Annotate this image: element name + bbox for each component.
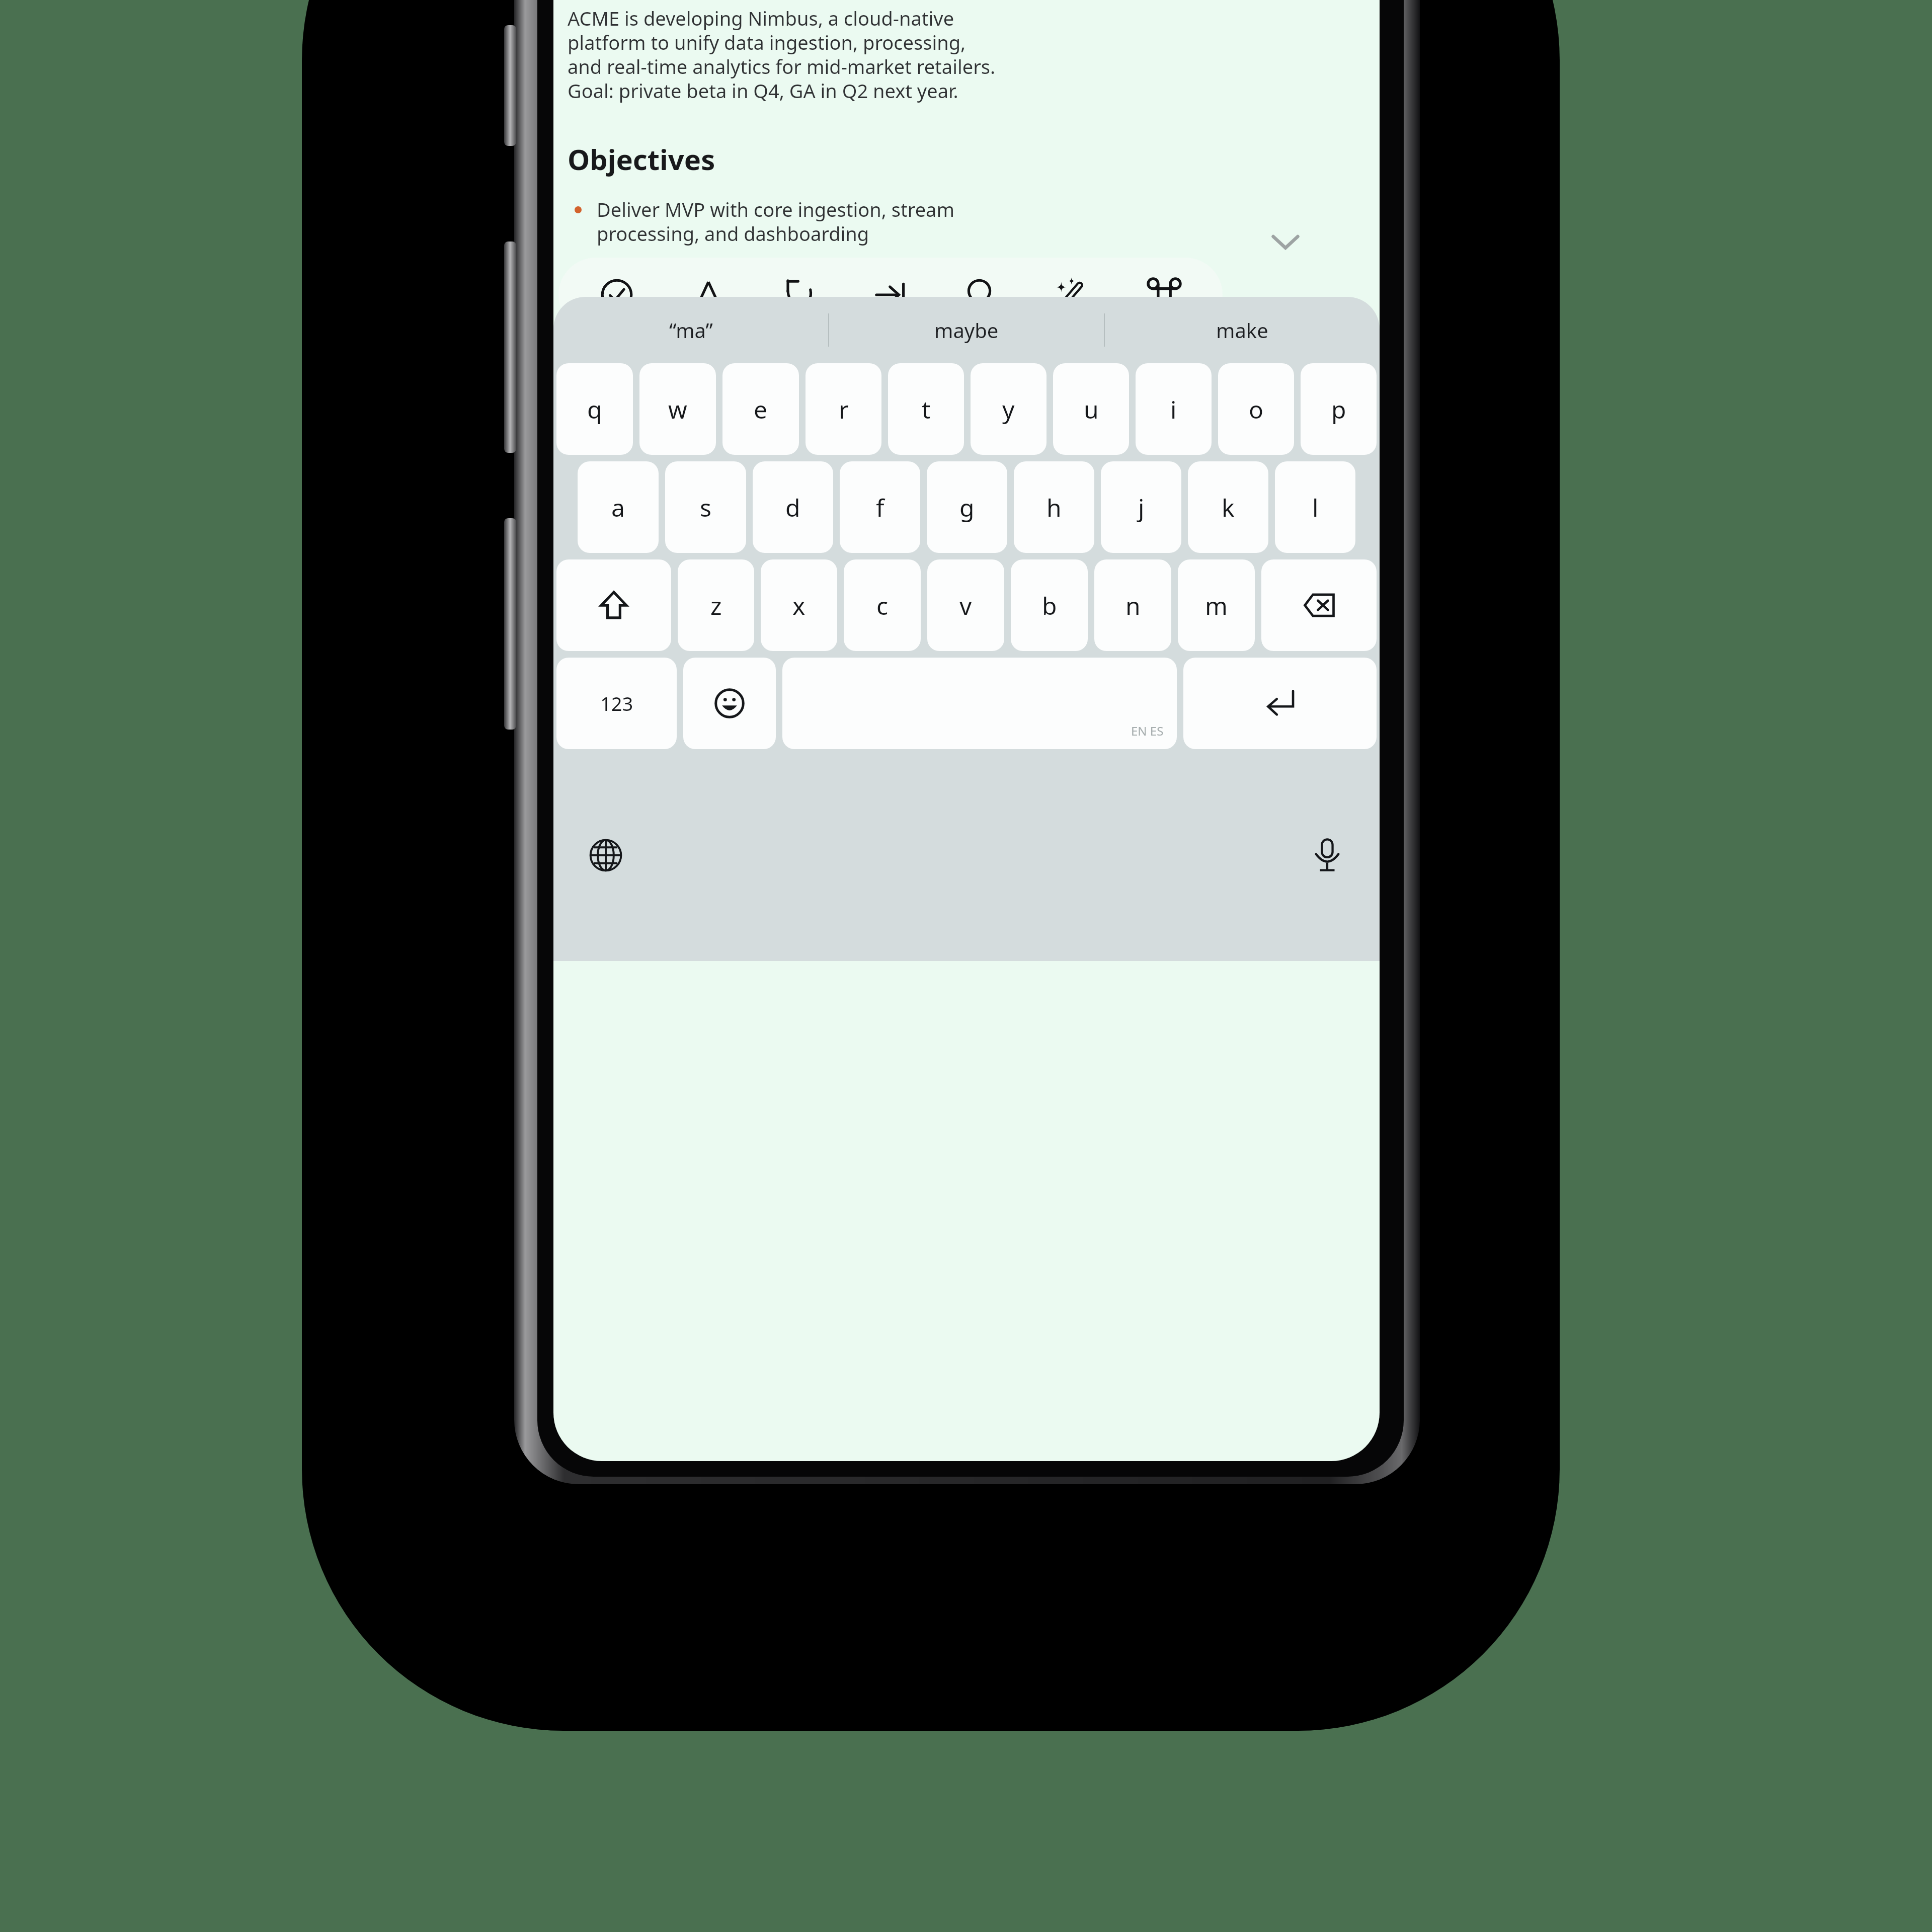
button[interactable]: “ma” (553, 297, 828, 363)
staticText: Deliver MVP with core ingestion, stream … (597, 196, 954, 247)
button[interactable]: c (844, 559, 921, 651)
button[interactable]: y (971, 363, 1046, 455)
staticText: w (668, 393, 687, 426)
staticText: o (1249, 393, 1264, 426)
staticText: u (1084, 393, 1099, 426)
staticText: SOC 2 Type I readiness by GA (597, 359, 858, 385)
button[interactable]: w (639, 363, 716, 455)
staticText: maybe (934, 316, 999, 344)
staticText: ACME is developing Nimbus, a cloud-nativ… (568, 5, 996, 104)
button[interactable]: s (665, 461, 746, 553)
staticText: make (1216, 316, 1268, 344)
button[interactable]: Space (782, 658, 1177, 749)
button[interactable]: v (927, 559, 1004, 651)
staticText: e (754, 393, 768, 426)
staticText: a (611, 491, 625, 524)
button[interactable]: Indent (858, 262, 923, 328)
staticText: s (700, 491, 711, 524)
button[interactable]: u (1053, 363, 1129, 455)
button[interactable]: q (556, 363, 633, 455)
button[interactable]: n (1094, 559, 1171, 651)
button[interactable]: r (806, 363, 881, 455)
button[interactable]: Backspace (1261, 559, 1377, 651)
button[interactable]: g (927, 461, 1007, 553)
button[interactable]: Collapse section (1258, 214, 1313, 269)
button[interactable]: z (678, 559, 754, 651)
staticText: q (587, 393, 602, 426)
button[interactable]: Shift (556, 559, 671, 651)
staticText: EN ES (1131, 722, 1164, 739)
staticText: z (710, 589, 722, 622)
button[interactable]: Emoji (683, 658, 776, 749)
button[interactable]: Enter (1183, 658, 1377, 749)
button[interactable]: maybe (829, 297, 1104, 363)
staticText: l (1312, 491, 1319, 524)
staticText: “ma” (669, 316, 713, 344)
button[interactable]: Change keyboard (577, 826, 635, 884)
staticText: g (959, 491, 975, 524)
button[interactable]: Text format (676, 262, 741, 328)
button[interactable]: i (1136, 363, 1212, 455)
staticText: c (876, 589, 889, 622)
staticText: y (1002, 393, 1015, 426)
staticText: Objectives (568, 140, 715, 178)
staticText: j (1138, 491, 1145, 524)
staticText: d (785, 491, 800, 524)
staticText: Onboard 5 design partners by end of Q4 (597, 321, 959, 347)
button[interactable]: Undo (767, 262, 832, 328)
staticText: Achieve sub-200ms p95 query latency on 1… (597, 259, 962, 309)
button[interactable]: f (840, 461, 920, 553)
button[interactable]: make (1105, 297, 1380, 363)
staticText: p (1331, 393, 1346, 426)
staticText: b (1042, 589, 1057, 622)
button[interactable]: o (1218, 363, 1294, 455)
staticText: 123 (600, 690, 633, 716)
button[interactable]: h (1014, 461, 1094, 553)
staticText: h (1046, 491, 1062, 524)
button[interactable]: k (1188, 461, 1268, 553)
staticText: x (792, 589, 806, 622)
button[interactable]: l (1275, 461, 1355, 553)
staticText: m (1205, 589, 1228, 622)
button[interactable]: Commands (1132, 262, 1197, 328)
button[interactable]: p (1301, 363, 1377, 455)
button[interactable]: b (1011, 559, 1088, 651)
button[interactable]: x (761, 559, 837, 651)
button[interactable]: m (1178, 559, 1255, 651)
button[interactable]: e (722, 363, 799, 455)
button[interactable]: Search (949, 262, 1014, 328)
staticText: Pricing and packaging proposal for Exec … (597, 397, 956, 448)
button[interactable]: d (753, 461, 833, 553)
button[interactable]: 123 (556, 658, 677, 749)
button[interactable]: t (888, 363, 964, 455)
staticText: i (1170, 393, 1177, 426)
staticText: t (922, 393, 931, 426)
button[interactable]: Voice input (1298, 826, 1356, 884)
staticText: v (959, 589, 972, 622)
button[interactable]: a (578, 461, 659, 553)
staticText: f (876, 491, 884, 524)
staticText: n (1125, 589, 1141, 622)
button[interactable]: j (1101, 461, 1181, 553)
button[interactable]: AI assist (1040, 262, 1106, 328)
staticText: r (839, 393, 849, 426)
button[interactable]: Mark done (584, 262, 650, 328)
staticText: k (1222, 491, 1235, 524)
